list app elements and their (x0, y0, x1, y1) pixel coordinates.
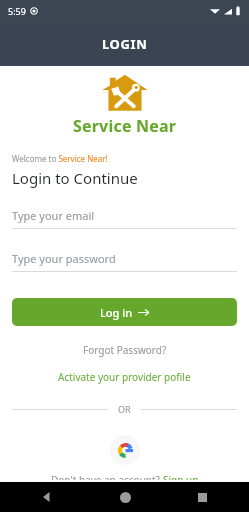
button[interactable]: Recent apps (189, 484, 215, 510)
button[interactable]: Type your email (12, 208, 237, 229)
button[interactable]: Type your password (12, 251, 237, 272)
staticText: Welcome to Service Near! (12, 153, 108, 164)
staticText: Type your password (12, 251, 116, 266)
staticText: Type your email (12, 208, 95, 223)
button[interactable]: Home (112, 484, 138, 510)
staticText: OR (118, 403, 131, 415)
button[interactable]: Back (34, 484, 60, 510)
staticText: Activate your provider pofile (58, 370, 191, 384)
staticText: Log in (100, 305, 133, 320)
staticText: Service Near (73, 115, 177, 137)
staticText: Don't have an account? (51, 473, 163, 480)
button[interactable]: Don't have an account? (45, 471, 205, 482)
staticText: LOGIN (102, 35, 148, 53)
button[interactable]: Log in (12, 298, 237, 326)
button[interactable]: Sign in with Google (110, 435, 140, 465)
staticText: Forgot Password? (83, 343, 167, 357)
button[interactable]: Activate your provider pofile (52, 369, 197, 385)
staticText: Login to Continue (12, 168, 138, 188)
button[interactable]: Forgot Password? (77, 342, 173, 358)
staticText: Sign up (163, 473, 199, 480)
staticText: 5:59 (8, 5, 26, 17)
